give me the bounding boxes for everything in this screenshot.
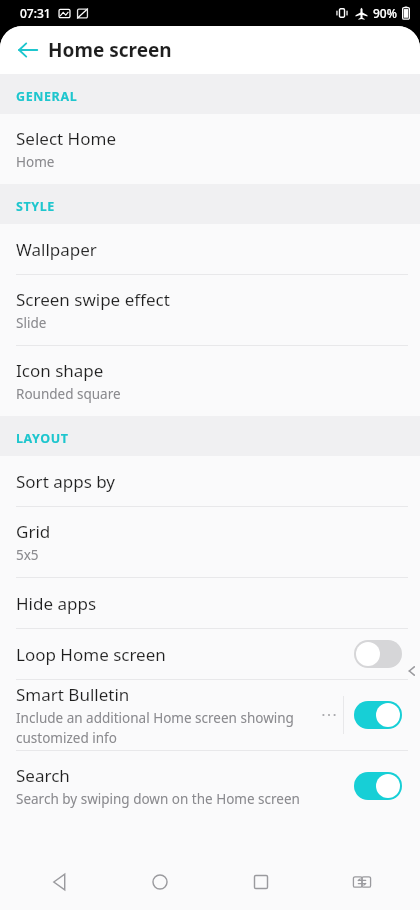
- staticText: Search by swiping down on the Home scree…: [16, 790, 300, 808]
- staticText: Home: [16, 153, 55, 171]
- button[interactable]: Loop Home screen: [0, 629, 420, 679]
- button[interactable]: Toggle on: [354, 701, 402, 729]
- staticText: GENERAL: [16, 88, 78, 105]
- staticText: Smart Bulletin: [16, 683, 130, 706]
- staticText: LAYOUT: [16, 430, 69, 447]
- button[interactable]: Dual screen: [311, 854, 412, 910]
- button[interactable]: Grid: [0, 507, 420, 577]
- button[interactable]: Home: [109, 854, 210, 910]
- staticText: Wallpaper: [16, 238, 97, 261]
- staticText: Grid: [16, 520, 51, 543]
- button[interactable]: Select Home: [0, 114, 420, 184]
- staticText: Icon shape: [16, 359, 104, 382]
- staticText: Loop Home screen: [16, 643, 166, 666]
- button[interactable]: Icon shape: [0, 346, 420, 416]
- button[interactable]: Toggle off: [354, 640, 402, 668]
- button[interactable]: Toggle on: [354, 772, 402, 800]
- staticText: Screen swipe effect: [16, 288, 170, 311]
- staticText: Home screen: [48, 37, 172, 63]
- staticText: Hide apps: [16, 592, 97, 615]
- staticText: Sort apps by: [16, 470, 115, 493]
- button[interactable]: Sort apps by: [0, 456, 420, 506]
- button[interactable]: Back: [8, 30, 48, 70]
- staticText: Search: [16, 764, 70, 787]
- button[interactable]: Back: [8, 854, 109, 910]
- staticText: Rounded square: [16, 385, 121, 403]
- staticText: Slide: [16, 314, 47, 332]
- staticText: Select Home: [16, 127, 116, 150]
- staticText: 07:31: [20, 5, 51, 21]
- staticText: Include an additional Home screen showin…: [16, 709, 294, 747]
- button[interactable]: Screen swipe effect: [0, 275, 420, 345]
- staticText: 5x5: [16, 546, 39, 564]
- staticText: 90%: [373, 5, 397, 21]
- staticText: STYLE: [16, 198, 55, 215]
- button[interactable]: Recents: [210, 854, 311, 910]
- button[interactable]: Smart Bulletin: [0, 680, 420, 750]
- button[interactable]: Search: [0, 751, 420, 821]
- button[interactable]: Wallpaper: [0, 224, 420, 274]
- button[interactable]: Hide apps: [0, 578, 420, 628]
